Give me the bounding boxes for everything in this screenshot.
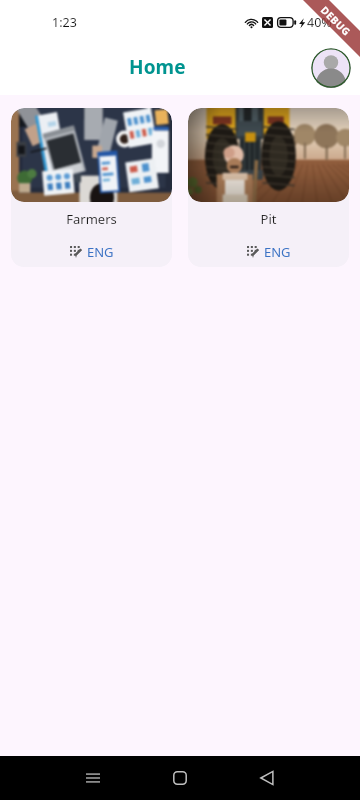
button[interactable]: ENG [70, 243, 114, 261]
staticText: 40% [307, 14, 332, 31]
staticText: Pit [188, 210, 349, 228]
staticText: ENG [87, 243, 114, 261]
button[interactable]: ENG [247, 243, 291, 261]
button[interactable]: Pit [188, 108, 349, 267]
button[interactable]: Recents [67, 756, 119, 800]
button[interactable]: Back [241, 756, 293, 800]
button[interactable]: Home [154, 756, 206, 800]
staticText: Home [129, 54, 186, 80]
button[interactable]: Profile [311, 48, 351, 88]
staticText: 1:23 [52, 14, 77, 31]
button[interactable]: Farmers [11, 108, 172, 267]
staticText: Farmers [11, 210, 172, 228]
staticText: ENG [264, 243, 291, 261]
